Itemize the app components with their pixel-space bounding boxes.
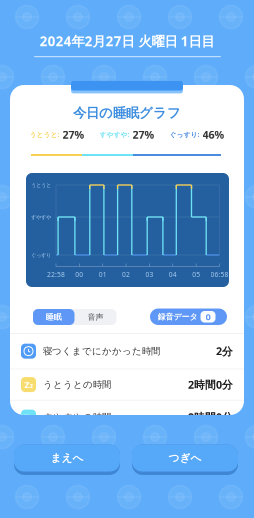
staticText: 2024年2月27日 火曜日 1日目 — [39, 32, 214, 50]
staticText: Z — [24, 411, 29, 423]
button[interactable]: つぎへ — [132, 444, 238, 475]
staticText: 04 — [169, 270, 177, 279]
staticText: 22:58 — [47, 270, 65, 279]
staticText: ぐっすり — [31, 252, 51, 259]
staticText: 27% — [62, 127, 84, 142]
staticText: つぎへ — [168, 451, 201, 464]
staticText: 02 — [122, 270, 130, 279]
staticText: 睡眠 — [46, 312, 62, 322]
staticText: z — [30, 414, 33, 423]
button[interactable]: Z — [10, 369, 244, 400]
button[interactable]: まえへ — [14, 444, 120, 475]
staticText: 2時間0分 — [188, 377, 233, 392]
staticText: 録音データ — [157, 312, 197, 322]
staticText: うとうと: — [29, 130, 59, 139]
staticText: 05 — [192, 270, 200, 279]
staticText: 46% — [202, 127, 224, 142]
button[interactable]: 睡眠 — [33, 309, 74, 325]
staticText: うとうとの時間 — [43, 379, 111, 390]
staticText: うとうと — [31, 182, 51, 189]
staticText: 01 — [99, 270, 107, 279]
staticText: 06:58 — [210, 270, 228, 279]
staticText: ぐっすり: — [169, 130, 199, 139]
staticText: 音声 — [87, 312, 103, 322]
button[interactable]: 音声 — [74, 309, 116, 325]
staticText: 2時間0分 — [188, 410, 233, 424]
staticText: まえへ — [50, 451, 83, 464]
staticText: 2分 — [216, 344, 233, 358]
staticText: 03 — [145, 270, 153, 279]
staticText: 27% — [132, 127, 154, 142]
staticText: 寝つくまでにかかった時間 — [43, 345, 160, 357]
staticText: 00 — [75, 270, 83, 279]
button[interactable]: 録音データ — [150, 308, 227, 325]
staticText: 0 — [205, 311, 210, 323]
staticText: z — [30, 381, 33, 390]
staticText: すやすや: — [99, 130, 129, 139]
staticText: すやすや — [31, 214, 51, 221]
button[interactable]: Z — [10, 401, 244, 434]
staticText: すやすやの時間 — [43, 411, 111, 423]
button[interactable]: 寝つくまでにかかった時間 — [10, 334, 244, 368]
staticText: 今日の睡眠グラフ — [73, 105, 181, 121]
staticText: Z — [24, 378, 29, 391]
